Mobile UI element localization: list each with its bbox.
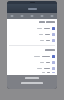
button[interactable]: [9, 49, 55, 51]
other: Toggle: [52, 55, 55, 58]
button[interactable]: Toggle: [9, 66, 55, 70]
button[interactable]: Search: [17, 13, 27, 19]
button[interactable]: Back: [7, 13, 17, 19]
other: Toggle: [52, 39, 55, 42]
button[interactable]: Toggle: [9, 38, 55, 42]
other: Toggle: [52, 67, 55, 70]
button[interactable]: Toggle: [9, 72, 55, 73]
button[interactable]: Toggle: [9, 60, 55, 64]
button[interactable]: Filter: [37, 13, 47, 19]
other: Toggle: [52, 61, 55, 64]
button[interactable]: More: [47, 13, 57, 19]
other: Toggle: [52, 72, 55, 73]
button[interactable]: Toggle: [9, 26, 55, 30]
button[interactable]: [9, 21, 55, 23]
other: Toggle: [52, 33, 55, 36]
button[interactable]: Add: [27, 13, 37, 19]
other: Toggle: [52, 27, 55, 30]
button[interactable]: Toggle: [9, 32, 55, 36]
button[interactable]: Toggle: [9, 54, 55, 58]
button[interactable]: [7, 4, 57, 13]
